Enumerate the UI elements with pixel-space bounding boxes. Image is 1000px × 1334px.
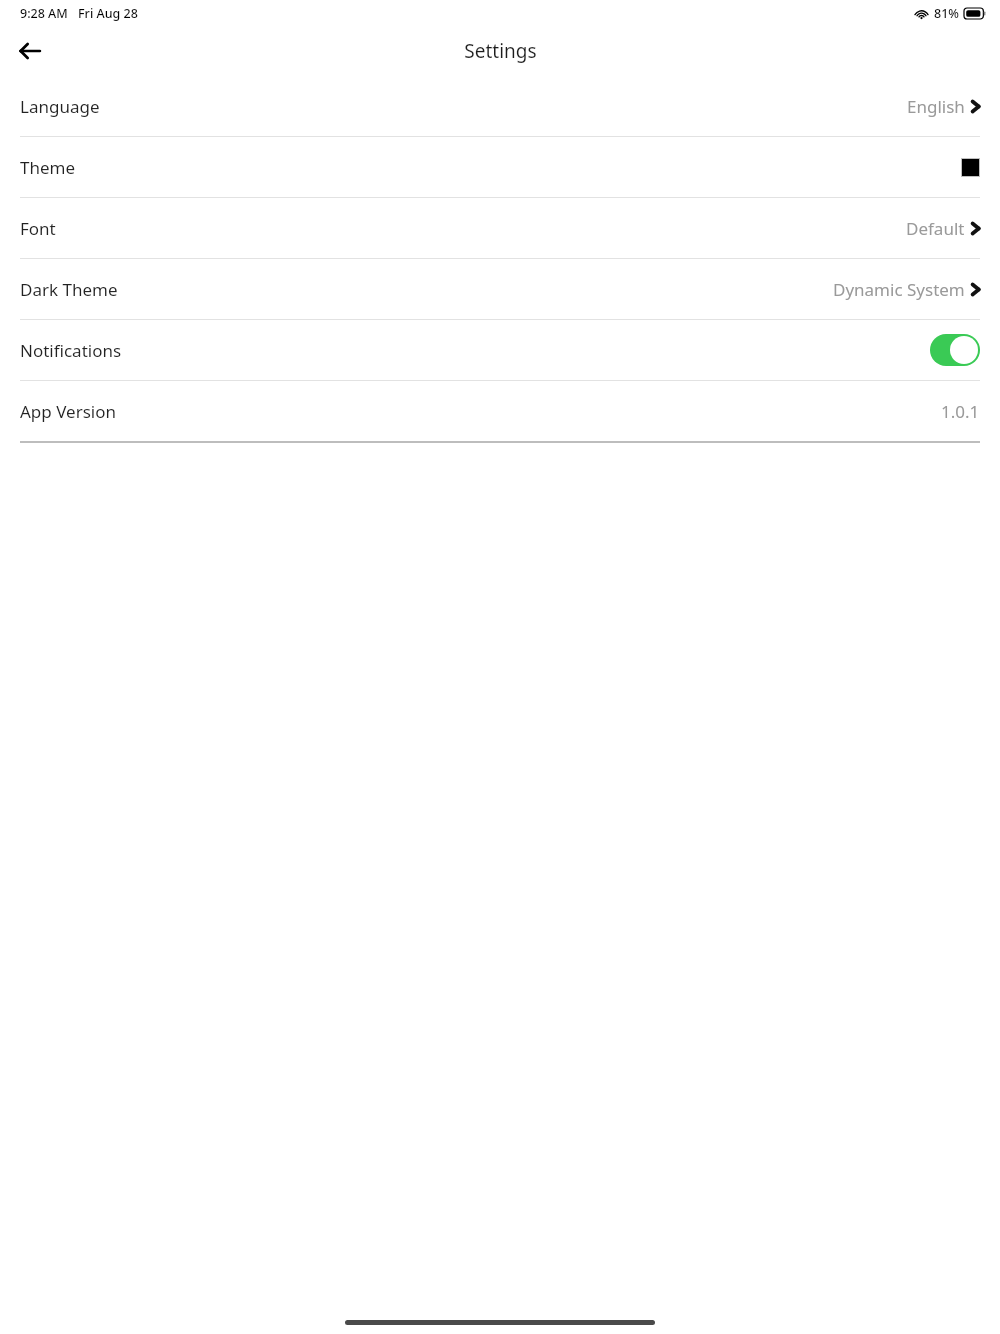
button[interactable]: Notifications [0, 320, 1000, 380]
staticText: Dynamic System [833, 278, 965, 301]
button[interactable]: Language [0, 76, 1000, 136]
button[interactable]: Notifications toggle [930, 334, 980, 366]
button[interactable]: App Version [0, 381, 1000, 441]
button[interactable]: Font [0, 198, 1000, 258]
staticText: App Version [20, 400, 116, 423]
staticText: 9:28 AM [20, 5, 68, 22]
staticText: Language [20, 95, 100, 118]
staticText: Fri Aug 28 [78, 5, 138, 22]
button[interactable]: Theme [0, 137, 1000, 197]
staticText: Settings [464, 38, 537, 64]
staticText: Font [20, 217, 56, 240]
staticText: Notifications [20, 339, 122, 362]
staticText: English [907, 95, 965, 118]
staticText: 1.0.1 [941, 400, 980, 423]
staticText: Dark Theme [20, 278, 118, 301]
staticText: 81% [934, 5, 959, 22]
staticText: Theme [20, 156, 76, 179]
staticText: Default [906, 217, 965, 240]
button[interactable]: Back [8, 29, 52, 73]
button[interactable]: Dark Theme [0, 259, 1000, 319]
